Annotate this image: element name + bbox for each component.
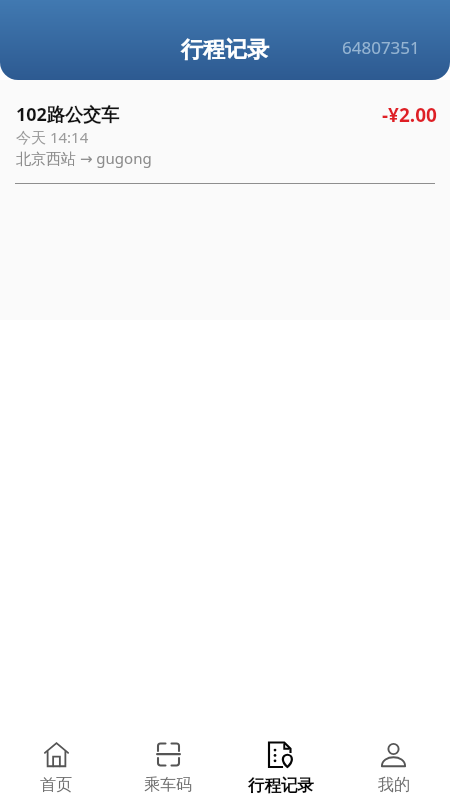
staticText: 64807351 bbox=[342, 36, 420, 59]
button[interactable]: Profile bbox=[337, 715, 450, 800]
staticText: 我的 bbox=[378, 775, 410, 795]
staticText: 首页 bbox=[40, 775, 72, 795]
staticText: 行程记录 bbox=[181, 36, 269, 64]
staticText: 今天 14:14 bbox=[16, 127, 89, 147]
staticText: 102路公交车 bbox=[16, 102, 119, 127]
button[interactable]: Home bbox=[0, 715, 112, 800]
button[interactable]: Ride code bbox=[112, 715, 224, 800]
button[interactable]: 102路公交车 bbox=[0, 80, 450, 184]
staticText: 乘车码 bbox=[144, 775, 192, 795]
staticText: 行程记录 bbox=[248, 775, 314, 796]
button[interactable]: Trip records bbox=[224, 715, 337, 800]
staticText: -¥2.00 bbox=[382, 102, 437, 128]
staticText: 北京西站 → gugong bbox=[16, 148, 152, 168]
